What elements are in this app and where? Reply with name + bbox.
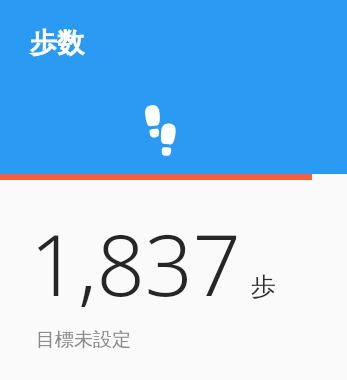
button[interactable] [0,174,347,180]
staticText: 1,837 [30,206,241,320]
button[interactable]: 歩数 [0,0,347,174]
other: 歩数アイコン [142,104,182,158]
staticText: 歩 [251,271,276,302]
button[interactable]: 1,837 [0,180,347,380]
staticText: 目標未設定 [36,328,131,352]
staticText: 歩数 [30,26,84,60]
